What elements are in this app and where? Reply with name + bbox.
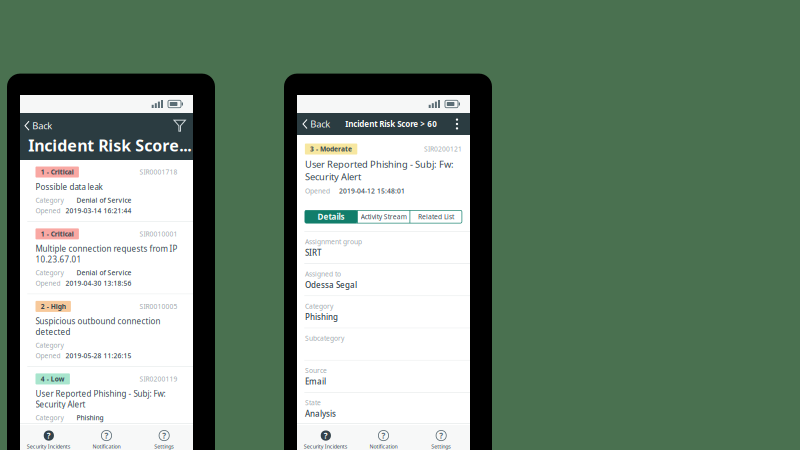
staticText: Details	[318, 211, 345, 222]
staticText: ?	[162, 430, 166, 441]
staticText: SIR0200119	[139, 374, 177, 383]
staticText: SIR0001718	[139, 168, 177, 176]
staticText: 2019-04-12 15:48:01	[65, 424, 131, 433]
button[interactable]: Related List	[410, 210, 462, 223]
staticText: 2 - High	[41, 302, 66, 311]
staticText: Opened	[35, 351, 60, 360]
button[interactable]: More options	[452, 118, 462, 130]
staticText: State	[305, 398, 321, 407]
staticText: Category	[35, 268, 63, 277]
button[interactable]: ?	[355, 424, 412, 450]
staticText: Settings	[431, 443, 451, 450]
staticText: ?	[439, 430, 443, 441]
button[interactable]: ?	[297, 424, 355, 450]
staticText: Incident Risk Score...	[28, 135, 191, 156]
button[interactable]: ?	[78, 424, 135, 450]
button[interactable]: 1 - Critical	[20, 160, 193, 221]
button[interactable]: ?	[20, 424, 78, 450]
staticText: Security Incidents	[27, 443, 71, 450]
staticText: Category	[305, 302, 333, 311]
button[interactable]: ?	[135, 424, 193, 450]
staticText: 3 - Moderate	[310, 145, 352, 153]
staticText: Category	[35, 341, 63, 350]
staticText: ?	[104, 430, 108, 441]
button[interactable]: Details	[305, 210, 357, 223]
button[interactable]: 4 - Low	[20, 367, 193, 439]
staticText: Denial of Service	[76, 196, 131, 205]
staticText: Opened	[35, 206, 60, 215]
button[interactable]: Back	[302, 117, 330, 131]
staticText: Suspicious outbound connection detected	[35, 316, 160, 337]
staticText: Denial of Service	[76, 268, 131, 277]
staticText: ?	[381, 430, 385, 441]
staticText: 2019-03-14 16:21:44	[65, 206, 131, 215]
staticText: 2019-05-28 11:26:15	[65, 351, 131, 360]
staticText: Related List	[418, 212, 454, 221]
staticText: SIR0010005	[139, 302, 177, 311]
staticText: Odessa Segal	[305, 279, 357, 290]
staticText: Phishing	[76, 413, 103, 422]
staticText: Settings	[154, 443, 174, 450]
staticText: Analysis	[305, 408, 336, 419]
staticText: Possible data leak	[35, 182, 102, 192]
staticText: Notification	[369, 443, 397, 450]
staticText: Incident Risk Score > 60	[345, 119, 437, 129]
staticText: Source	[305, 366, 327, 375]
staticText: User Reported Phishing - Subj: Fw: Secur…	[35, 388, 165, 410]
staticText: 1 - Critical	[41, 229, 74, 238]
staticText: Opened	[35, 424, 60, 433]
button[interactable]: 1 - Critical	[20, 222, 193, 294]
staticText: 4 - Low	[41, 374, 65, 383]
staticText: 1 - Critical	[41, 168, 74, 176]
staticText: Phishing	[305, 312, 338, 322]
staticText: Security Incidents	[304, 443, 348, 450]
staticText: Multiple connection requests from IP 10.…	[35, 243, 177, 265]
staticText: 2019-04-12 15:48:01	[339, 186, 405, 195]
staticText: Assignment group	[305, 237, 362, 246]
staticText: Category	[35, 196, 63, 205]
staticText: SIRT	[305, 247, 321, 258]
staticText: Notification	[92, 443, 120, 450]
button[interactable]: Filter	[173, 119, 186, 132]
staticText: ?	[47, 430, 51, 441]
staticText: Subcategory	[305, 334, 344, 343]
button[interactable]: Activity Stream	[358, 210, 409, 223]
staticText: Activity Stream	[361, 212, 407, 221]
staticText: Category	[35, 413, 63, 422]
staticText: Back	[32, 119, 52, 132]
staticText: ?	[324, 430, 328, 441]
button[interactable]: ?	[412, 424, 470, 450]
staticText: User Reported Phishing - Subj: Fw: Secur…	[305, 158, 454, 183]
button[interactable]: Back	[24, 118, 52, 133]
staticText: SIR0200121	[424, 145, 462, 153]
staticText: SIR0010001	[139, 229, 177, 238]
staticText: Email	[305, 376, 326, 387]
staticText: 2019-04-30 13:18:56	[65, 279, 131, 288]
staticText: Opened	[305, 186, 330, 195]
staticText: Back	[310, 118, 330, 130]
button[interactable]: 2 - High	[20, 294, 193, 366]
staticText: Opened	[35, 279, 60, 288]
staticText: Assigned to	[305, 269, 341, 278]
